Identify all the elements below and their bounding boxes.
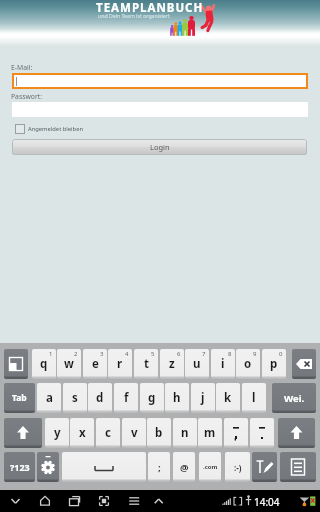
button[interactable]: k	[216, 383, 240, 413]
staticText: 4	[125, 350, 129, 358]
staticText: o	[244, 356, 252, 372]
staticText: 6	[177, 350, 181, 358]
button[interactable]: dash period	[250, 418, 274, 448]
staticText: 8	[228, 350, 232, 358]
button[interactable]: Shift	[278, 418, 315, 448]
button[interactable]: u	[185, 349, 209, 379]
staticText: t	[144, 356, 149, 372]
button[interactable]: @	[173, 452, 195, 482]
button[interactable]: a	[37, 383, 61, 413]
staticText: h	[173, 390, 181, 406]
button[interactable]: w	[57, 349, 81, 379]
staticText: Passwort:	[11, 92, 42, 101]
staticText: d	[96, 390, 104, 406]
staticText: 5	[151, 350, 155, 358]
staticText: v	[131, 425, 138, 441]
staticText: i	[221, 356, 225, 372]
button[interactable]: q	[32, 349, 56, 379]
button[interactable]: b	[147, 418, 171, 448]
button[interactable]: p	[262, 349, 286, 379]
staticText: @	[180, 461, 189, 474]
button[interactable]: m	[198, 418, 222, 448]
staticText: k	[224, 390, 232, 406]
staticText: x	[79, 425, 86, 441]
staticText: g	[148, 390, 156, 406]
button[interactable]: o	[236, 349, 260, 379]
staticText: r	[117, 356, 123, 372]
staticText: w	[64, 356, 74, 372]
staticText: TEAMPLANBUCH	[96, 0, 204, 16]
staticText: a	[46, 390, 53, 406]
staticText: 14:04	[254, 495, 280, 509]
button[interactable]: Backspace	[292, 349, 316, 379]
button[interactable]: Settings	[37, 452, 59, 482]
button[interactable]: Handwriting	[252, 452, 277, 482]
button[interactable]: Navigation bar	[4, 490, 180, 512]
staticText: und Dein Team ist organisiert	[98, 12, 170, 19]
button[interactable]: x	[70, 418, 94, 448]
staticText: Login	[150, 142, 170, 152]
button[interactable]: e	[83, 349, 107, 379]
staticText: .com	[203, 463, 218, 471]
staticText: Wei.	[284, 392, 305, 405]
button[interactable]	[12, 73, 308, 89]
button[interactable]: :-)	[225, 452, 250, 482]
button[interactable]: z	[160, 349, 184, 379]
staticText: b	[155, 425, 163, 441]
staticText: ?123	[10, 461, 30, 473]
button[interactable]: .com	[199, 452, 221, 482]
button[interactable]: l	[242, 383, 266, 413]
staticText: c	[105, 425, 111, 441]
staticText: n	[181, 425, 189, 441]
button[interactable]: i	[211, 349, 235, 379]
button[interactable]: s	[63, 383, 87, 413]
button[interactable]: ?123	[4, 452, 35, 482]
button[interactable]: r	[108, 349, 132, 379]
button[interactable]: Angemeldet bleiben	[15, 124, 80, 134]
button[interactable]: j	[191, 383, 215, 413]
staticText: l	[252, 390, 256, 406]
staticText: 7	[202, 350, 206, 358]
staticText: 3	[100, 350, 104, 358]
staticText: Angemeldet bleiben	[28, 125, 83, 133]
button[interactable]: c	[96, 418, 120, 448]
button[interactable]: Shift	[4, 418, 42, 448]
staticText: 0	[279, 350, 283, 358]
staticText: :-)	[234, 462, 242, 473]
staticText: j	[201, 390, 205, 406]
staticText: p	[270, 356, 278, 372]
staticText: y	[54, 425, 61, 441]
button[interactable]: f	[114, 383, 138, 413]
button[interactable]: g	[140, 383, 164, 413]
staticText: e	[92, 356, 99, 372]
staticText: 1	[49, 350, 53, 358]
button[interactable]: v	[122, 418, 146, 448]
button[interactable]: d	[88, 383, 112, 413]
staticText: 9	[253, 350, 257, 358]
button[interactable]: y	[45, 418, 69, 448]
button[interactable]: dash comma	[224, 418, 248, 448]
button[interactable]: Login	[12, 139, 307, 155]
button[interactable]: Clipboard	[280, 452, 316, 482]
staticText: Tab	[12, 392, 27, 404]
staticText: E-Mail:	[11, 63, 33, 72]
staticText: ;	[158, 461, 161, 474]
staticText: u	[193, 356, 201, 372]
button[interactable]: Hide keyboard	[4, 349, 28, 379]
staticText: q	[40, 356, 48, 372]
button[interactable]: Tab	[4, 383, 35, 413]
staticText: f	[124, 390, 129, 406]
button[interactable]: Space	[62, 452, 146, 482]
button[interactable]: n	[173, 418, 197, 448]
staticText: z	[169, 356, 175, 372]
button[interactable]: Wei.	[272, 383, 316, 413]
button[interactable]: h	[165, 383, 189, 413]
staticText: 2	[74, 350, 78, 358]
staticText: s	[72, 390, 78, 406]
button[interactable]: t	[134, 349, 158, 379]
button[interactable]: ;	[148, 452, 170, 482]
staticText: m	[204, 425, 216, 441]
